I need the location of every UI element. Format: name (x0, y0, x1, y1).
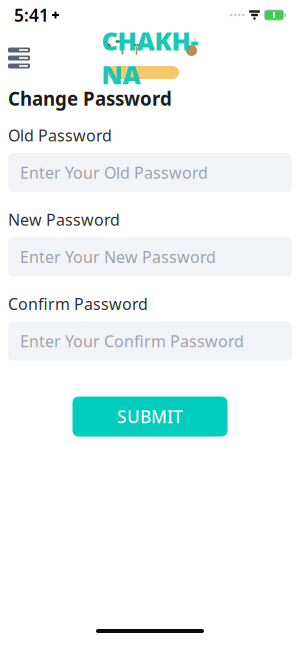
button[interactable]: Enter Your Old Password (8, 153, 292, 192)
staticText: SUBMIT (117, 405, 183, 428)
staticText: 5:41 (14, 3, 49, 26)
staticText: New Password (8, 209, 120, 230)
staticText: Change Password (8, 86, 172, 111)
staticText: Confirm Password (8, 293, 148, 314)
staticText: CHAKHNA (101, 24, 198, 91)
button[interactable]: SUBMIT (72, 396, 227, 436)
button[interactable]: Menu (0, 39, 38, 76)
staticText: Enter Your New Password (20, 246, 216, 267)
button[interactable]: Enter Your New Password (8, 237, 292, 276)
staticText: Enter Your Confirm Password (20, 330, 244, 352)
staticText: Old Password (8, 125, 112, 146)
staticText: Enter Your Old Password (20, 162, 208, 183)
button[interactable]: Enter Your Confirm Password (8, 321, 292, 360)
